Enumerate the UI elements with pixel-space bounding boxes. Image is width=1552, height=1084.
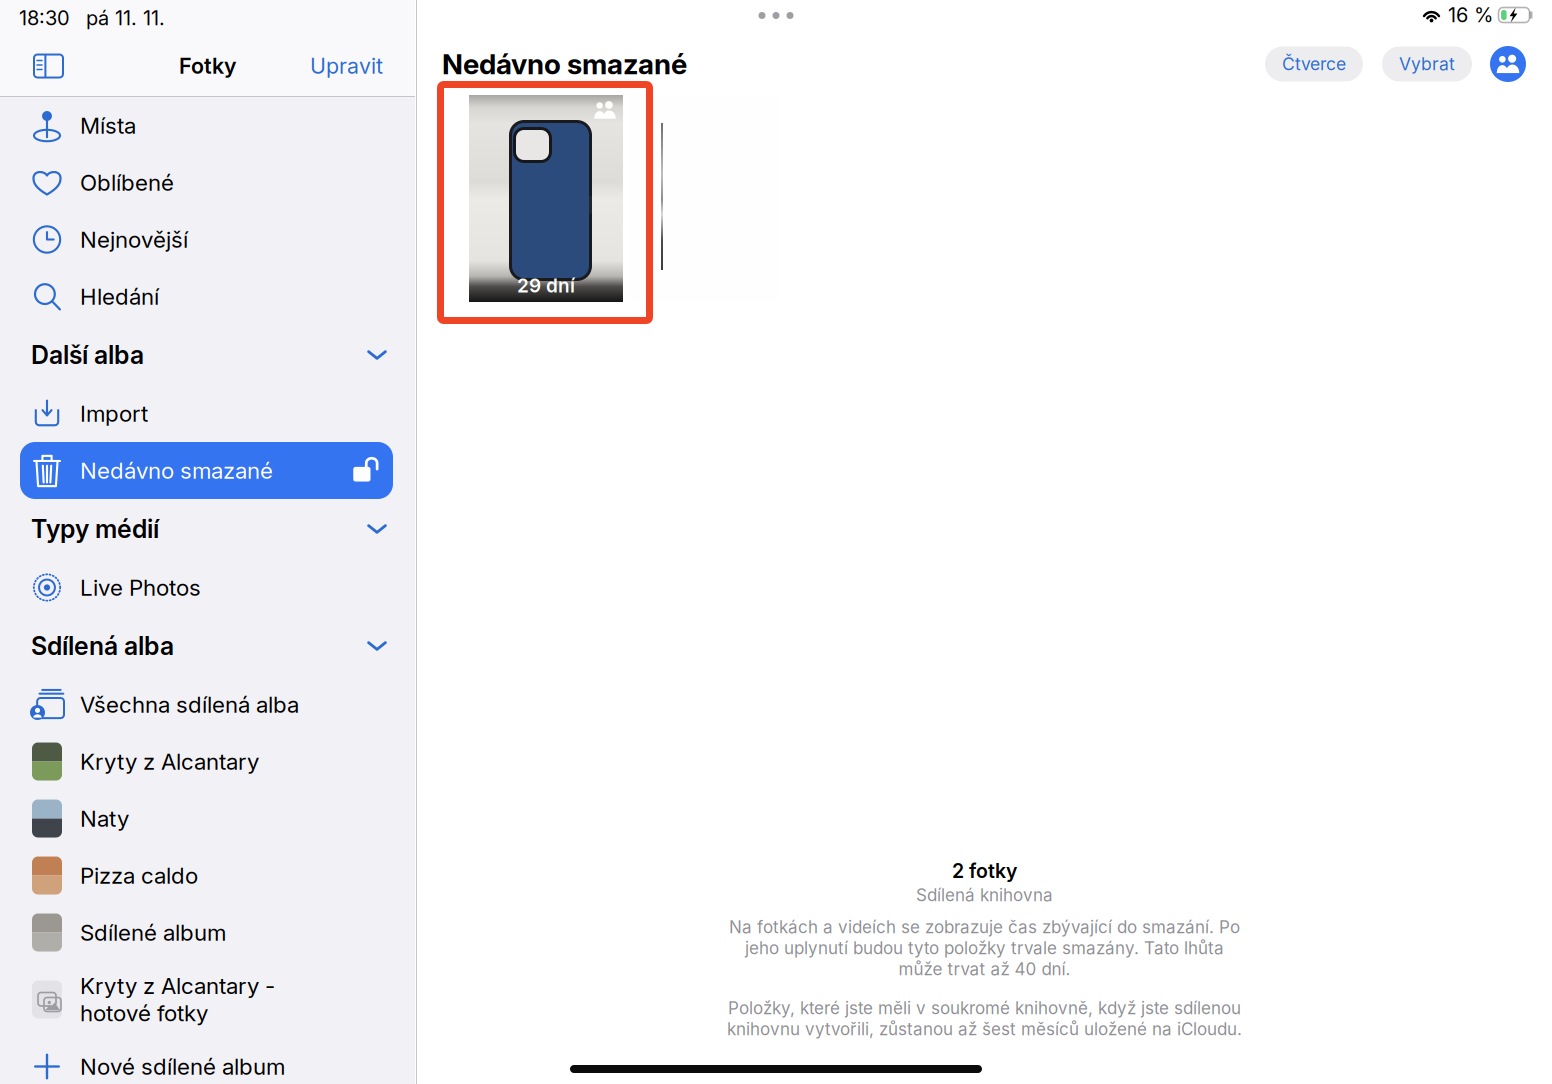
button[interactable]: Všechna sdílená alba — [0, 676, 415, 733]
staticText: Všechna sdílená alba — [80, 691, 299, 718]
button[interactable]: Čtverce — [1265, 46, 1363, 81]
staticText: pá 11. 11. — [86, 6, 165, 30]
button[interactable]: Nedávno smazané — [0, 442, 415, 499]
button[interactable]: Live Photos — [0, 559, 415, 616]
staticText: 2 fotky — [952, 859, 1017, 883]
button[interactable]: Hledání — [0, 268, 415, 325]
staticText: Místa — [80, 112, 136, 139]
staticText: 29 dní — [517, 274, 575, 297]
staticText: 18:30 — [19, 6, 70, 30]
staticText: Kryty z Alcantary — [80, 748, 259, 775]
button[interactable]: Nejnovější — [0, 211, 415, 268]
staticText: Pizza caldo — [80, 862, 198, 889]
button[interactable]: Nové sdílené album — [0, 1038, 415, 1084]
staticText: Hledání — [80, 283, 159, 310]
staticText: může trvat až 40 dní. — [898, 959, 1070, 979]
staticText: Naty — [80, 805, 129, 832]
staticText: Sdílená alba — [31, 631, 174, 661]
button[interactable]: Shared library — [1490, 46, 1526, 82]
button[interactable]: Naty — [0, 790, 415, 847]
button[interactable]: Sdílené album — [0, 904, 415, 961]
staticText: Na fotkách a videích se zobrazuje čas zb… — [729, 917, 1240, 937]
button[interactable]: Sdílená alba — [0, 616, 415, 676]
button[interactable]: Kryty z Alcantary - hotové fotky — [0, 961, 415, 1038]
staticText: Nedávno smazané — [442, 47, 687, 81]
button[interactable] — [627, 95, 781, 302]
staticText: Položky, které jste měli v soukromé knih… — [728, 998, 1241, 1018]
staticText: jeho uplynutí budou tyto položky trvale … — [745, 938, 1224, 958]
staticText: Další alba — [31, 340, 144, 370]
staticText: Upravit — [310, 53, 383, 79]
staticText: Vybrat — [1399, 53, 1455, 75]
button[interactable]: 29 dní — [469, 95, 623, 302]
staticText: Import — [80, 400, 148, 427]
staticText: Nedávno smazané — [80, 457, 273, 484]
button[interactable]: Kryty z Alcantary — [0, 733, 415, 790]
button[interactable]: Typy médií — [0, 499, 415, 559]
staticText: Čtverce — [1282, 53, 1346, 75]
button[interactable]: Upravit — [310, 53, 383, 79]
button[interactable]: Oblíbené — [0, 154, 415, 211]
staticText: Nejnovější — [80, 226, 188, 253]
staticText: Typy médií — [31, 514, 159, 544]
staticText: Fotky — [179, 53, 237, 79]
button[interactable]: Pizza caldo — [0, 847, 415, 904]
staticText: Sdílené album — [80, 919, 226, 946]
staticText: 16 % — [1448, 3, 1493, 27]
button[interactable]: Místa — [0, 97, 415, 154]
button[interactable]: Další alba — [0, 325, 415, 385]
staticText: Oblíbené — [80, 169, 174, 196]
staticText: Kryty z Alcantary - hotové fotky — [80, 972, 275, 1027]
staticText: knihovnu vytvořili, zůstanou až šest měs… — [727, 1019, 1242, 1039]
staticText: Live Photos — [80, 574, 201, 601]
staticText: Sdílená knihovna — [916, 885, 1053, 905]
button[interactable]: Toggle sidebar — [33, 53, 64, 78]
button[interactable]: Vybrat — [1382, 46, 1472, 81]
staticText: Nové sdílené album — [80, 1053, 285, 1080]
button[interactable]: Import — [0, 385, 415, 442]
